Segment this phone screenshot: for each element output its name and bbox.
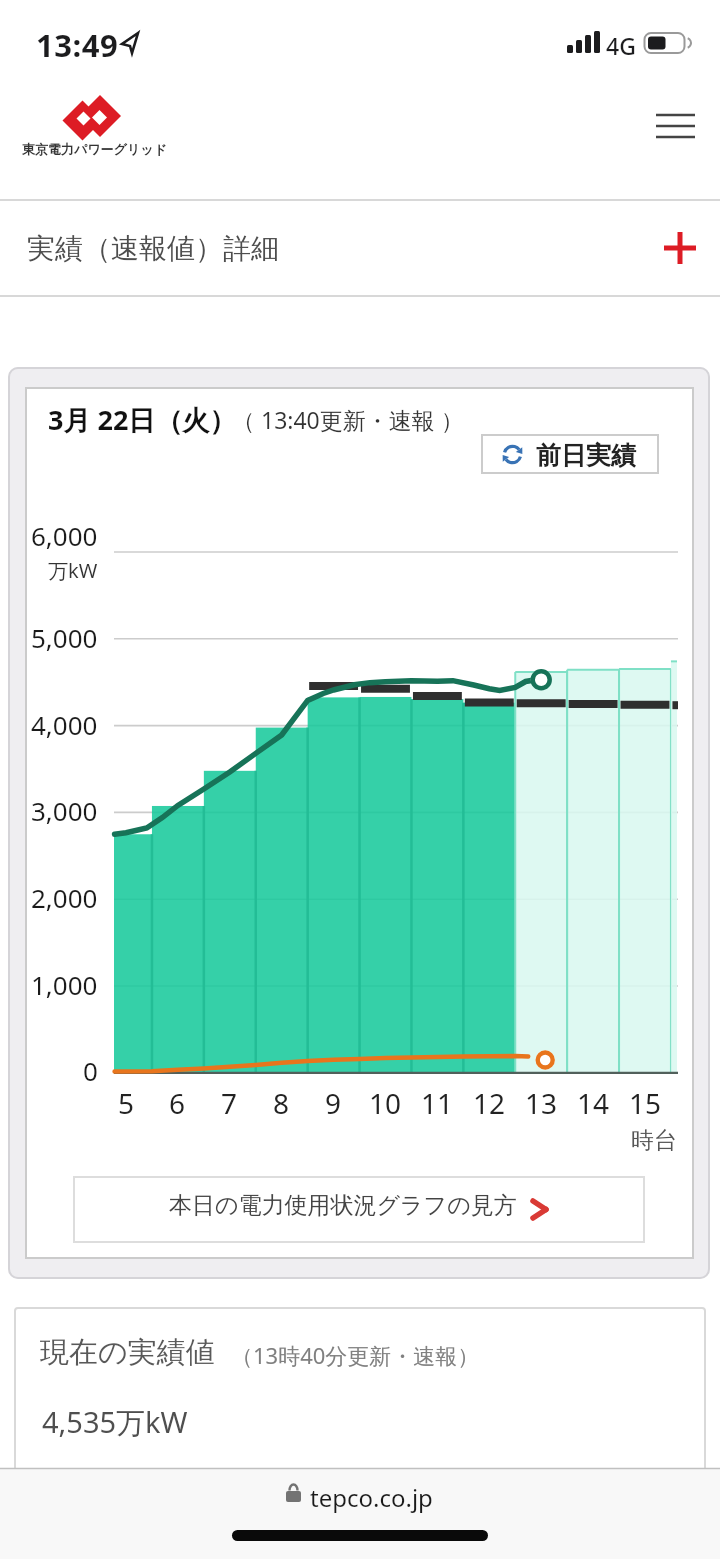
staticText: 現在の実績値	[40, 1334, 215, 1371]
button[interactable]	[0, 199, 720, 297]
staticText: 3月 22日（火）	[48, 401, 237, 438]
staticText: 10	[369, 1084, 402, 1122]
staticText: 9	[325, 1084, 342, 1122]
staticText: 1,000	[31, 967, 98, 1002]
staticText: 6,000	[31, 518, 98, 553]
staticText: 4,000	[31, 707, 98, 742]
staticText: 実績（速報値）詳細	[27, 231, 279, 266]
button[interactable]	[481, 434, 659, 474]
staticText: 前日実績	[536, 440, 636, 471]
staticText: 6	[169, 1084, 186, 1122]
staticText: 3,000	[31, 793, 98, 828]
staticText: 4G	[606, 30, 636, 61]
staticText: 東京電力パワーグリッド	[22, 141, 167, 157]
staticText: 15	[629, 1084, 662, 1122]
staticText: 7	[221, 1084, 238, 1122]
staticText: tepco.co.jp	[310, 1481, 433, 1514]
staticText: 5,000	[31, 620, 98, 655]
staticText: 5	[118, 1084, 135, 1122]
staticText: （13時40分更新・速報）	[231, 1340, 480, 1370]
staticText: 万kW	[48, 557, 98, 584]
staticText: 0	[83, 1053, 98, 1088]
button[interactable]	[0, 1468, 720, 1559]
staticText: 11	[421, 1084, 454, 1122]
staticText: （ 13:40更新・速報 ）	[232, 404, 464, 435]
staticText: 時台	[631, 1126, 677, 1155]
staticText: 8	[273, 1084, 290, 1122]
button[interactable]	[640, 100, 710, 152]
staticText: 本日の電力使用状況グラフの見方	[169, 1191, 517, 1220]
staticText: 13	[525, 1084, 558, 1122]
staticText: 4,535万kW	[42, 1402, 188, 1442]
button[interactable]	[73, 1176, 645, 1243]
staticText: 14	[577, 1084, 610, 1122]
staticText: 13:49	[36, 24, 119, 66]
staticText: 2,000	[31, 880, 98, 915]
staticText: 12	[473, 1084, 506, 1122]
